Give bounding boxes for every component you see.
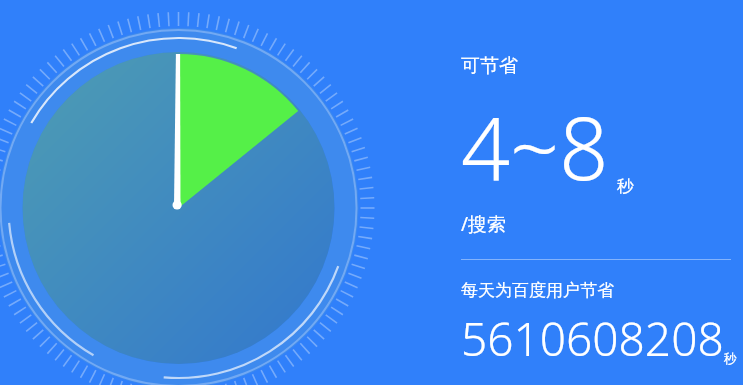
staticText: 可节省: [461, 54, 518, 78]
staticText: 4~8: [461, 88, 609, 205]
staticText: 每天为百度用户节省: [461, 280, 614, 301]
staticText: 5610608208: [461, 307, 724, 370]
staticText: 秒: [724, 350, 731, 366]
staticText: 秒: [617, 176, 634, 197]
other: Savings gauge: [0, 0, 743, 385]
staticText: /搜索: [461, 211, 507, 237]
